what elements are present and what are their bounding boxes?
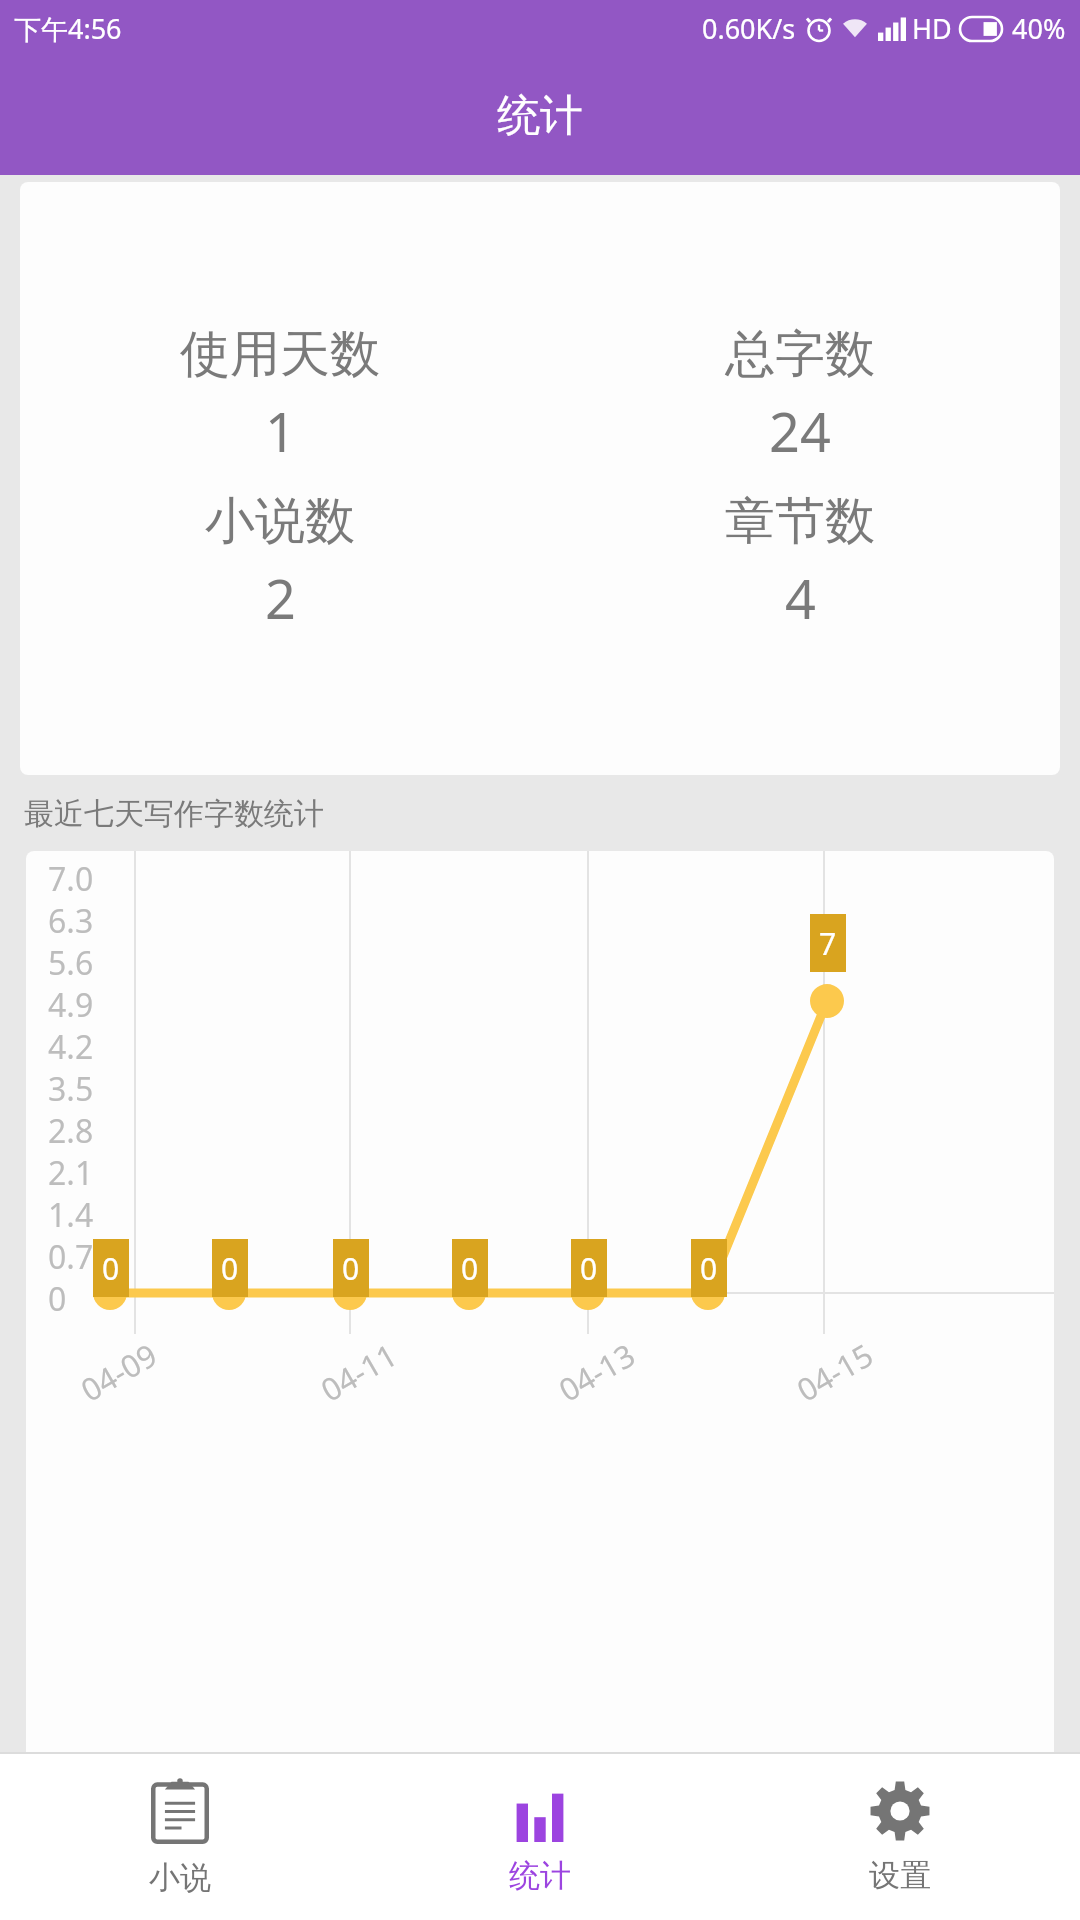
staticText: 4.2 bbox=[48, 1025, 94, 1067]
staticText: 最近七天写作字数统计 bbox=[24, 795, 324, 833]
staticText: 下午4:56 bbox=[14, 10, 122, 47]
staticText: 统计 bbox=[509, 1856, 571, 1895]
staticText: 2.8 bbox=[48, 1109, 94, 1151]
button[interactable]: 统计 bbox=[360, 1754, 720, 1920]
staticText: 7.0 bbox=[48, 857, 94, 899]
staticText: 小说 bbox=[149, 1858, 211, 1897]
staticText: 0 bbox=[342, 1248, 360, 1289]
staticText: 使用天数 bbox=[180, 323, 380, 386]
staticText: 2 bbox=[265, 561, 296, 635]
staticText: 7 bbox=[819, 923, 837, 964]
staticText: 统计 bbox=[497, 89, 583, 143]
staticText: 0 bbox=[48, 1277, 67, 1319]
staticText: 24 bbox=[769, 394, 831, 468]
staticText: 0.7 bbox=[48, 1235, 94, 1277]
staticText: 3.5 bbox=[48, 1067, 94, 1109]
staticText: 0 bbox=[700, 1248, 718, 1289]
staticText: 0 bbox=[102, 1248, 120, 1289]
staticText: 设置 bbox=[869, 1856, 931, 1895]
staticText: 总字数 bbox=[725, 323, 875, 386]
staticText: 章节数 bbox=[725, 490, 875, 553]
staticText: 0 bbox=[580, 1248, 598, 1289]
staticText: 4.9 bbox=[48, 983, 94, 1025]
other: 小说 bbox=[151, 1778, 209, 1844]
staticText: 4 bbox=[785, 561, 816, 635]
staticText: 1 bbox=[265, 394, 296, 468]
staticText: 0 bbox=[461, 1248, 479, 1289]
staticText: 小说数 bbox=[205, 490, 355, 553]
other: 统计 bbox=[510, 1780, 570, 1842]
staticText: 5.6 bbox=[48, 941, 94, 983]
staticText: 2.1 bbox=[48, 1151, 94, 1193]
staticText: 6.3 bbox=[48, 899, 94, 941]
staticText: 04-15 bbox=[789, 1334, 880, 1410]
staticText: 04-11 bbox=[313, 1334, 404, 1410]
staticText: 04-13 bbox=[551, 1334, 642, 1410]
staticText: HD bbox=[912, 10, 952, 47]
button[interactable]: 小说 bbox=[0, 1754, 360, 1920]
staticText: 0 bbox=[221, 1248, 239, 1289]
staticText: 0.60K/s bbox=[702, 10, 796, 47]
other: 设置 bbox=[869, 1780, 931, 1842]
button[interactable]: 设置 bbox=[720, 1754, 1080, 1920]
staticText: 40% bbox=[1012, 10, 1066, 47]
staticText: 04-09 bbox=[73, 1334, 164, 1410]
staticText: 1.4 bbox=[48, 1193, 94, 1235]
button[interactable]: 使用天数 bbox=[20, 182, 1060, 775]
